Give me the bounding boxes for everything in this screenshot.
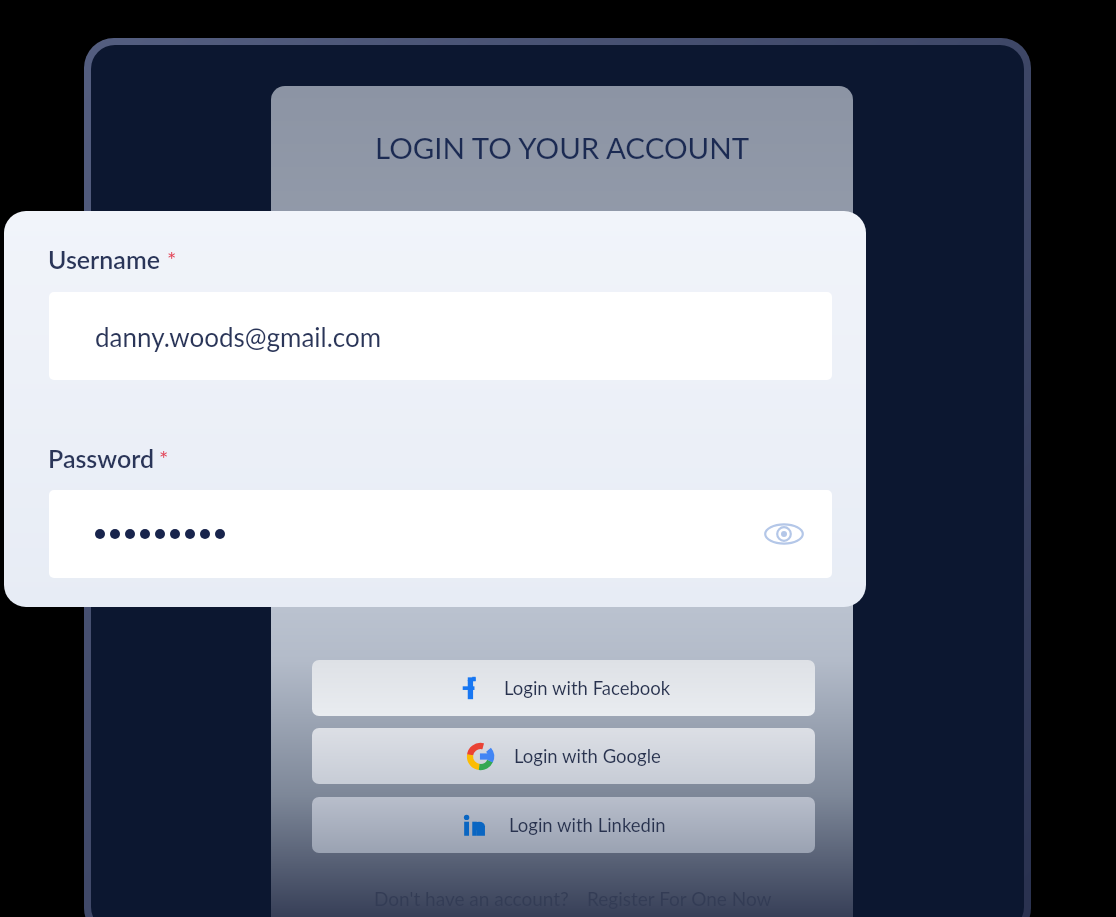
staticText: LOGIN TO YOUR ACCOUNT (375, 130, 750, 165)
staticText: danny.woods@gmail.com (95, 321, 382, 352)
button[interactable]: Login with Facebook (312, 660, 815, 716)
button[interactable]: Login with Linkedin (312, 797, 815, 853)
staticText: * (159, 445, 169, 471)
staticText: Login with Google (514, 745, 661, 767)
button[interactable]: Show password (762, 512, 806, 556)
button[interactable]: danny.woods@gmail.com (49, 292, 832, 380)
button[interactable]: Login with Google (312, 728, 815, 784)
staticText: * (167, 246, 177, 272)
staticText: Login with Facebook (504, 677, 671, 699)
button[interactable]: Register For One Now (587, 887, 772, 910)
staticText: Username (48, 244, 160, 274)
staticText: Password (48, 443, 155, 473)
button[interactable]: Show password (49, 490, 832, 578)
staticText: Don't have an account? (374, 887, 569, 910)
staticText: Login with Linkedin (509, 814, 666, 836)
